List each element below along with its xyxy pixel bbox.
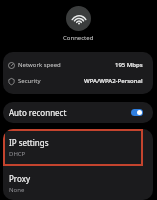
button[interactable]: Auto reconnect (3, 102, 153, 123)
staticText: Auto reconnect (9, 107, 67, 118)
staticText: DHCP (9, 150, 26, 158)
button[interactable]: Network speed (3, 57, 153, 73)
staticText: Connected (63, 34, 94, 42)
staticText: IP settings (9, 137, 49, 148)
staticText: Proxy (9, 173, 30, 184)
button[interactable]: Proxy (3, 166, 153, 200)
button[interactable]: IP settings (3, 129, 143, 166)
staticText: Security (18, 77, 41, 85)
staticText: WPA/WPA2-Personal (84, 77, 143, 85)
staticText: Network speed (18, 61, 61, 69)
staticText: 195 Mbps (115, 61, 143, 69)
button[interactable]: Security (3, 73, 153, 89)
staticText: None (9, 186, 25, 194)
